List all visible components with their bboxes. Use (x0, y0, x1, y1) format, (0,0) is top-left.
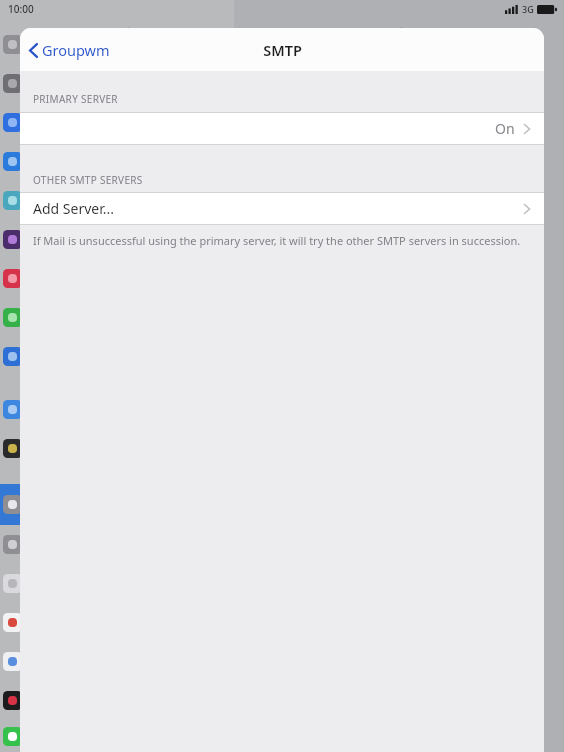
button[interactable]: On (20, 113, 544, 144)
button[interactable]: Add Server... (20, 193, 544, 224)
staticText: 10:00 (8, 2, 34, 16)
staticText: SMTP (263, 40, 302, 60)
staticText: Settings (97, 22, 157, 42)
staticText: Add Server... (33, 199, 114, 218)
staticText: If Mail is unsuccessful using the primar… (33, 233, 521, 248)
staticText: Groupwm (42, 40, 110, 60)
staticText: On (495, 119, 515, 138)
staticText: 3G (522, 3, 534, 15)
staticText: PRIMARY SERVER (33, 92, 118, 106)
button[interactable]: Groupwm (25, 36, 118, 64)
staticText: OTHER SMTP SERVERS (33, 173, 143, 187)
staticText: Server Settings (319, 22, 430, 42)
